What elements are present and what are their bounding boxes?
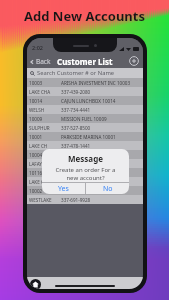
button[interactable]: Add customer bbox=[129, 56, 139, 66]
button[interactable]: 10009 bbox=[27, 114, 143, 123]
staticText: 337-691-9928 bbox=[61, 197, 91, 203]
staticText: WELSH bbox=[29, 107, 45, 113]
button[interactable]: No bbox=[86, 183, 129, 194]
button[interactable]: Back bbox=[29, 57, 51, 66]
button[interactable]: Yes bbox=[42, 183, 85, 194]
staticText: ARISHA INVESTMENT INC 10003 bbox=[61, 80, 131, 86]
staticText: LAKE CH bbox=[29, 143, 48, 149]
staticText: LAFAYETTE CLUB 10004 bbox=[61, 152, 112, 158]
staticText: Add New Accounts bbox=[24, 7, 145, 25]
staticText: Customer List bbox=[57, 56, 113, 67]
button[interactable]: LAKE CH bbox=[27, 177, 143, 186]
staticText: LAFAYET bbox=[29, 161, 48, 167]
staticText: Search Customer # or Name bbox=[37, 69, 115, 77]
staticText: 2:02 bbox=[32, 44, 43, 51]
staticText: LAKE CH bbox=[29, 179, 48, 185]
staticText: WESTLAKE bbox=[29, 197, 52, 203]
button[interactable]: WELSH bbox=[27, 105, 143, 114]
button[interactable]: 10004 bbox=[27, 150, 143, 159]
staticText: LAKE CHA bbox=[29, 89, 51, 95]
button[interactable]: 10003 bbox=[27, 78, 143, 87]
staticText: SHOPPERS VALUE 10116 bbox=[61, 170, 114, 176]
button[interactable]: 10001 bbox=[27, 132, 143, 141]
staticText: Back bbox=[36, 57, 51, 66]
button[interactable]: LAKE CHA bbox=[27, 87, 143, 96]
staticText: Yes bbox=[58, 184, 69, 194]
staticText: 10004 bbox=[29, 152, 43, 158]
button[interactable]: WESTLAKE bbox=[27, 195, 143, 204]
staticText: 337-527-8500 bbox=[61, 125, 91, 131]
staticText: 10001 bbox=[29, 134, 43, 140]
staticText: 337-477-9001 bbox=[61, 179, 91, 185]
staticText: 10014 bbox=[29, 98, 43, 104]
staticText: SULPHUR bbox=[29, 125, 50, 131]
staticText: CAJUN LUNCHBOX 10014 bbox=[61, 98, 116, 104]
button[interactable]: LAFAYET bbox=[27, 159, 143, 168]
button[interactable]: 10014 bbox=[27, 96, 143, 105]
staticText: Create an order For a new account? bbox=[53, 166, 118, 182]
button[interactable]: LAKE CH bbox=[27, 141, 143, 150]
staticText: 10009 bbox=[29, 116, 43, 122]
button[interactable]: 10116 bbox=[27, 168, 143, 177]
staticText: 337-734-4441 bbox=[61, 107, 91, 113]
button[interactable]: Home bbox=[30, 279, 41, 289]
button[interactable]: Search Customer # or Name bbox=[27, 68, 143, 78]
staticText: Message bbox=[42, 153, 129, 164]
staticText: 337-439-2080 bbox=[61, 89, 91, 95]
button[interactable]: SULPHUR bbox=[27, 123, 143, 132]
staticText: WESTLAKE MARKET 10002 bbox=[61, 188, 118, 194]
staticText: 10002 bbox=[29, 188, 43, 194]
staticText: PARKSIDE MARINA 10001 bbox=[61, 134, 116, 140]
staticText: 337-232-7777 bbox=[61, 161, 91, 167]
staticText: 10003 bbox=[29, 80, 43, 86]
staticText: 337-478-1441 bbox=[61, 143, 91, 149]
button[interactable]: 10002 bbox=[27, 186, 143, 195]
staticText: 10116 bbox=[29, 170, 43, 176]
staticText: MISSION FUEL 10009 bbox=[61, 116, 107, 122]
staticText: No bbox=[103, 184, 113, 194]
